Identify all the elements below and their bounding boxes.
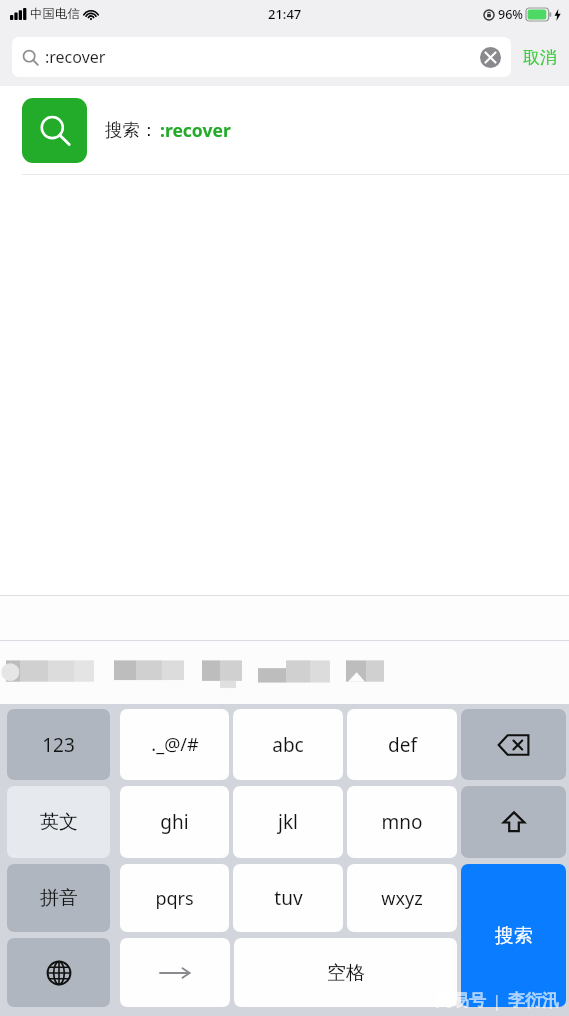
button[interactable]: ._@/# [120,709,229,780]
staticText: 空格 [327,961,365,985]
staticText: 96% [498,6,523,23]
button[interactable]: wxyz [347,864,457,932]
staticText: :recover [45,46,106,68]
staticText: 21:47 [268,5,302,23]
button[interactable]: 空格 [234,938,457,1007]
staticText: ._@/# [151,732,199,757]
button[interactable]: mno [347,786,457,858]
staticText: 123 [42,732,75,758]
staticText: 李衍汛 [508,990,559,1011]
staticText: ghi [160,809,189,835]
button[interactable]: Backspace [461,709,566,780]
staticText: 搜索： [105,119,158,141]
staticText: 网易号 [435,990,486,1011]
staticText: abc [272,732,304,758]
staticText: 英文 [40,810,78,834]
button[interactable]: Shift [461,786,566,858]
button[interactable]: Next [120,938,230,1007]
button[interactable]: tuv [233,864,343,932]
button[interactable]: Clear [479,46,501,68]
staticText: :recover [160,118,231,142]
button[interactable]: Switch keyboard [7,938,110,1007]
staticText: tuv [274,885,303,911]
button[interactable]: 英文 [7,786,110,858]
staticText: 搜索 [495,924,533,948]
staticText: 中国电信 [30,6,80,22]
staticText: 取消 [523,47,557,68]
staticText: jkl [278,809,298,835]
button[interactable]: 123 [7,709,110,780]
button[interactable]: 拼音 [7,864,110,932]
button[interactable]: jkl [233,786,343,858]
button[interactable]: 取消 [511,37,569,77]
button[interactable]: 搜索： [0,86,569,174]
button[interactable]: 搜索 [461,864,566,1007]
button[interactable]: ghi [120,786,229,858]
button[interactable]: :recover [12,37,511,77]
button[interactable]: def [347,709,457,780]
staticText: mno [381,809,423,835]
button[interactable]: abc [233,709,343,780]
staticText: pqrs [155,886,194,911]
staticText: | [492,989,502,1012]
button[interactable]: pqrs [120,864,229,932]
staticText: wxyz [381,886,423,911]
staticText: def [388,732,417,758]
staticText: 拼音 [40,886,78,910]
